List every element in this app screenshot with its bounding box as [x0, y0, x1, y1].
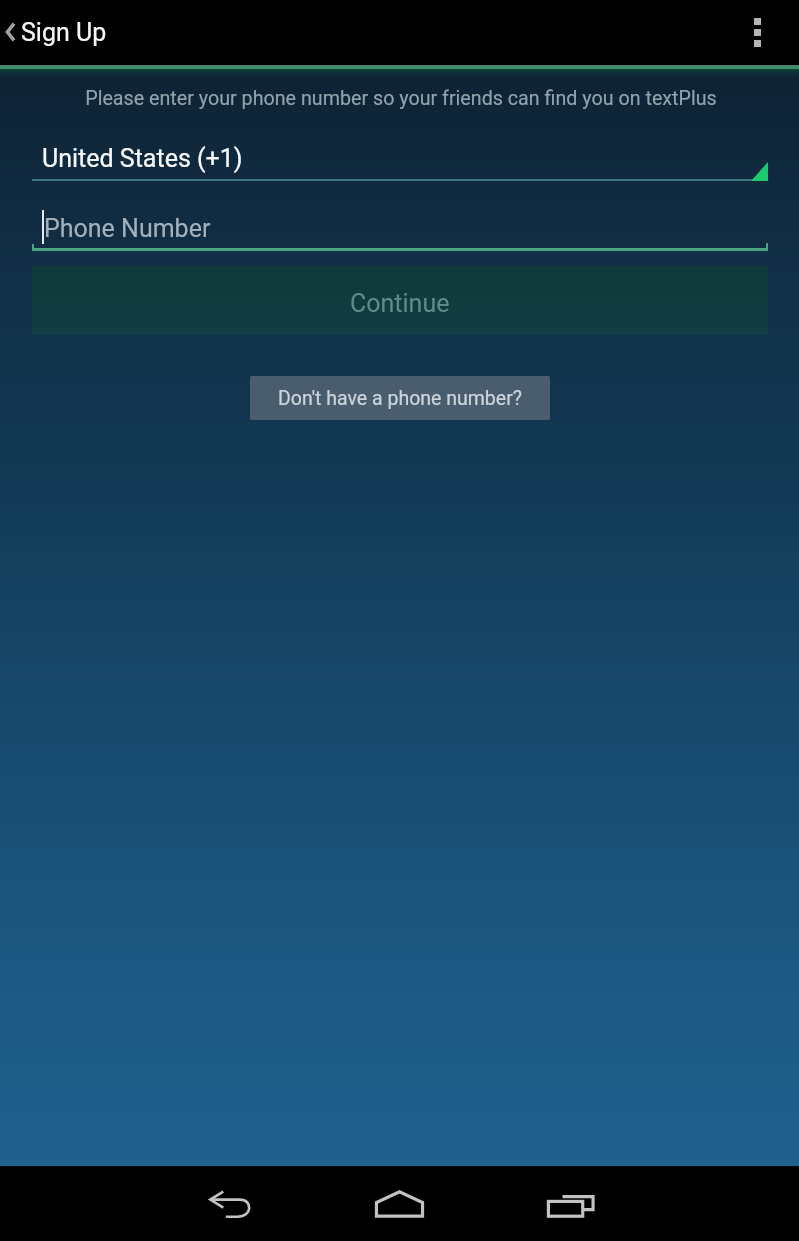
staticText: Continue: [350, 289, 450, 318]
button[interactable]: More options: [716, 0, 799, 65]
button[interactable]: Don't have a phone number?: [250, 376, 550, 420]
button[interactable]: Continue: [32, 266, 768, 335]
button[interactable]: Phone Number: [32, 205, 768, 251]
button[interactable]: Home: [342, 1166, 457, 1241]
button[interactable]: United States (+1): [32, 134, 768, 181]
staticText: Please enter your phone number so your f…: [25, 87, 777, 110]
button[interactable]: Recent apps: [513, 1166, 628, 1241]
button[interactable]: Back: [172, 1166, 287, 1241]
staticText: Phone Number: [44, 214, 211, 243]
staticText: United States (+1): [42, 144, 243, 173]
staticText: Sign Up: [21, 18, 107, 47]
button[interactable]: Sign Up: [0, 0, 121, 64]
staticText: Don't have a phone number?: [278, 387, 522, 410]
